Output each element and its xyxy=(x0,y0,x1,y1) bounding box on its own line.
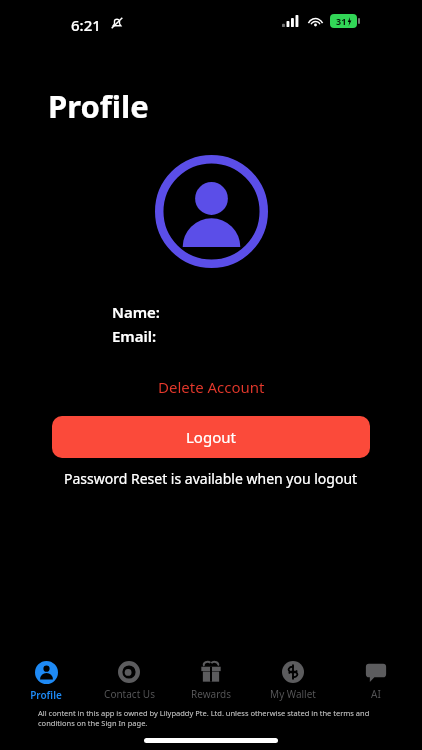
staticText: Logout xyxy=(186,427,236,447)
other: Contact Us xyxy=(118,661,140,683)
staticText: Profile xyxy=(30,688,62,702)
staticText: My Wallet xyxy=(270,687,316,701)
staticText: Rewards xyxy=(191,687,231,701)
staticText: Contact Us xyxy=(104,687,155,701)
other: AI xyxy=(365,661,387,683)
staticText: Name: xyxy=(112,302,160,322)
button[interactable]: Logout xyxy=(52,416,370,458)
staticText: 31 xyxy=(336,15,347,27)
staticText: All content in this app is owned by Lily… xyxy=(38,708,392,728)
button[interactable]: Profile xyxy=(10,658,82,705)
other: My Wallet xyxy=(282,661,304,683)
staticText: Profile xyxy=(48,85,149,127)
staticText: AI xyxy=(371,687,381,701)
button[interactable]: Rewards xyxy=(175,658,247,704)
button[interactable]: Contact Us xyxy=(93,658,165,704)
staticText: Password Reset is available when you log… xyxy=(64,469,358,488)
button[interactable]: AI xyxy=(340,658,412,704)
other: Profile xyxy=(35,661,58,684)
button[interactable]: Delete Account xyxy=(150,375,273,399)
other: Rewards xyxy=(200,661,222,683)
staticText: 6:21 xyxy=(71,15,101,35)
staticText: Delete Account xyxy=(158,377,265,397)
staticText: Email: xyxy=(112,326,157,346)
button[interactable]: My Wallet xyxy=(257,658,329,704)
